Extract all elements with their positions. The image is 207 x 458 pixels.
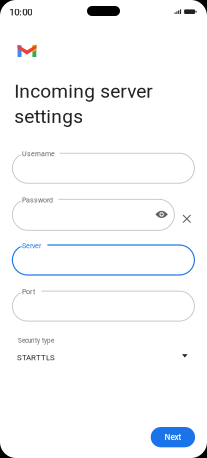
staticText: settings <box>14 105 83 127</box>
staticText: Port <box>22 288 35 296</box>
button[interactable]: Clear password <box>178 210 196 228</box>
staticText: Username <box>22 150 55 158</box>
staticText: Server <box>22 242 41 250</box>
button[interactable]: Next <box>151 427 195 447</box>
staticText: STARTTLS <box>17 353 55 362</box>
button[interactable]: Security type <box>15 332 197 368</box>
staticText: 10:00 <box>9 7 32 18</box>
staticText: Incoming server <box>14 80 152 102</box>
staticText: Next <box>164 432 181 442</box>
staticText: Password <box>22 196 53 204</box>
staticText: Security type <box>18 337 54 344</box>
